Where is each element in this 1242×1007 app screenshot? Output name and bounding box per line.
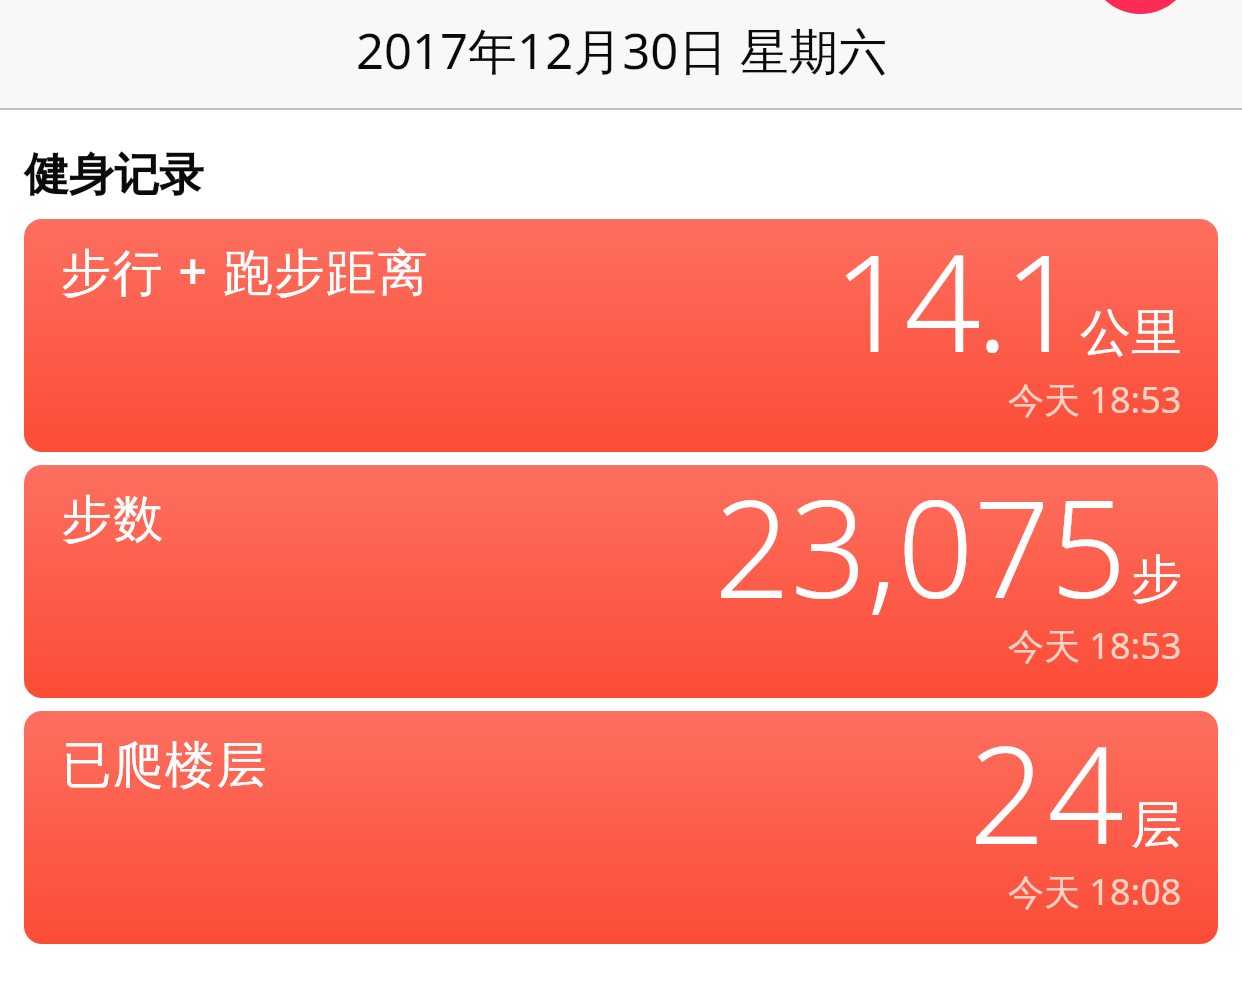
button[interactable]: [0, 0, 1242, 108]
staticText: 步行 + 跑步距离: [61, 237, 430, 305]
button[interactable]: 步数: [24, 465, 1218, 698]
button[interactable]: Notifications: [1088, 0, 1193, 14]
staticText: 步: [1131, 547, 1182, 611]
staticText: 2017年12月30日 星期六: [356, 17, 887, 84]
button[interactable]: 步行 + 跑步距离: [24, 219, 1218, 452]
staticText: 步数: [61, 488, 164, 551]
staticText: 23,075: [714, 465, 1127, 638]
staticText: 14.1: [833, 219, 1076, 392]
staticText: 今天 18:53: [1008, 621, 1182, 670]
staticText: 公里: [1080, 301, 1182, 365]
button[interactable]: 已爬楼层: [24, 711, 1218, 944]
staticText: 24: [969, 711, 1127, 884]
staticText: 今天 18:08: [1008, 867, 1182, 916]
staticText: 今天 18:53: [1008, 375, 1182, 424]
staticText: 层: [1131, 793, 1182, 857]
staticText: 已爬楼层: [61, 734, 267, 797]
staticText: 健身记录: [24, 147, 204, 204]
